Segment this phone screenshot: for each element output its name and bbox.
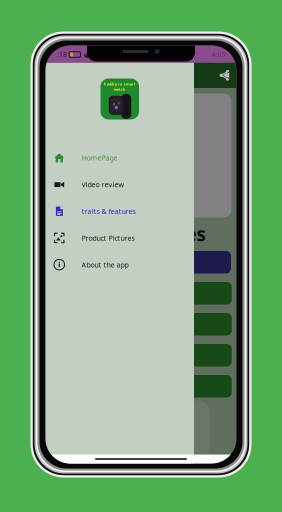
staticText: traits & features [54,221,205,247]
button[interactable]: Video review [45,171,194,198]
button[interactable]: Product Pictures [45,225,194,251]
staticText: HomePage [81,153,117,163]
button[interactable]: Website [50,313,232,335]
staticText: traits & features [81,206,135,216]
button[interactable]: Product pictures [50,344,232,366]
button[interactable]: About the app [45,251,194,278]
staticText: Product Pictures [81,233,134,243]
button[interactable]: About the app [50,375,232,397]
button[interactable]: Video review [50,282,232,304]
button[interactable]: traits & features [45,198,194,225]
staticText: watch [114,86,126,92]
staticText: hw68 pro smart [104,81,136,86]
button[interactable]: HomePage [45,144,194,171]
staticText: 4:09 [211,50,225,59]
staticText: About the app [81,260,128,269]
staticText: .18 [57,50,67,59]
button[interactable]: Share [45,62,236,88]
staticText: Video review [81,180,124,189]
button[interactable]: Select model [51,251,231,273]
